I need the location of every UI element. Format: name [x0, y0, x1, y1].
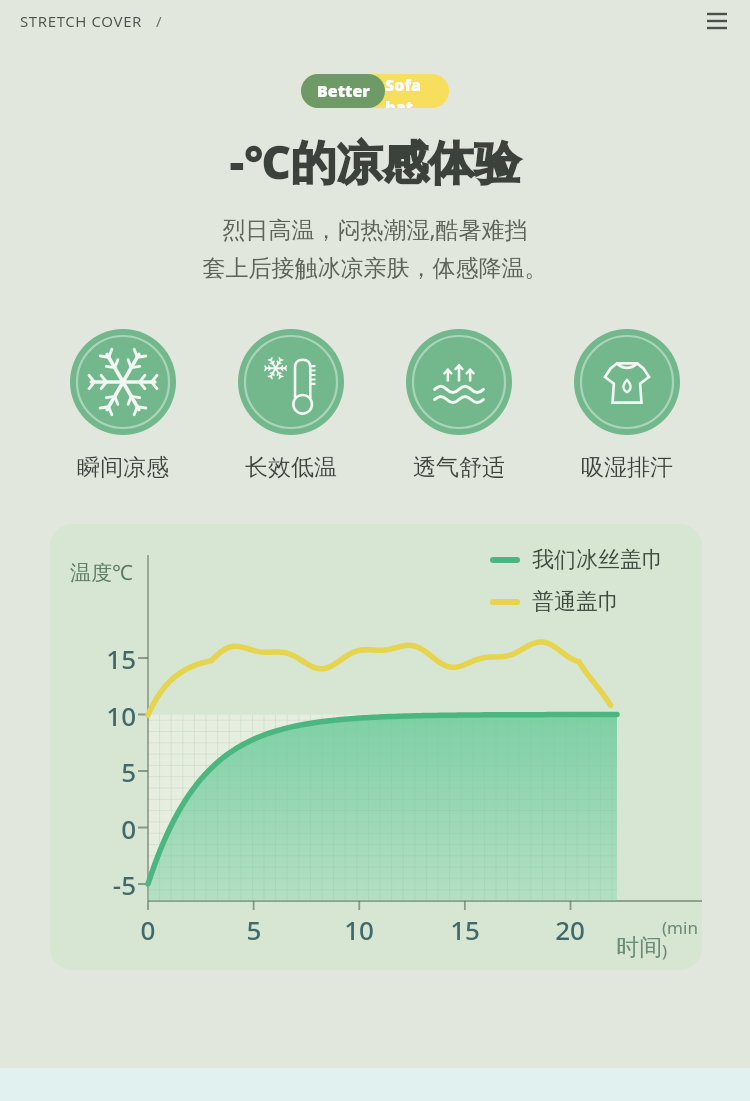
- staticText: 透气舒适: [413, 453, 505, 482]
- staticText: 时间: [616, 933, 662, 962]
- staticText: 10: [50, 698, 136, 733]
- staticText: Sofa hat: [385, 74, 449, 108]
- staticText: 15: [50, 641, 136, 676]
- staticText: 长效低温: [245, 453, 337, 482]
- other: 吸湿排汗: [574, 329, 680, 435]
- staticText: 0: [50, 811, 136, 846]
- other: 长效低温: [238, 329, 344, 435]
- staticText: 20: [544, 912, 596, 947]
- staticText: STRETCH COVER: [20, 11, 142, 31]
- staticText: 瞬间凉感: [77, 453, 169, 482]
- staticText: 温度℃: [70, 558, 133, 587]
- button[interactable]: 长效低温: [238, 329, 344, 482]
- button[interactable]: 瞬间凉感: [70, 329, 176, 482]
- staticText: 0: [122, 912, 174, 947]
- staticText: /: [156, 11, 162, 31]
- staticText: 烈日高温，闷热潮湿,酷暑难挡: [0, 213, 750, 244]
- staticText: 5: [228, 912, 280, 947]
- button[interactable]: Menu: [702, 6, 732, 36]
- staticText: 吸湿排汗: [581, 453, 673, 482]
- button[interactable]: Better: [301, 74, 449, 108]
- staticText: 10: [333, 912, 385, 947]
- staticText: -℃的凉感体验: [0, 130, 750, 193]
- staticText: 我们冰丝盖巾: [532, 546, 664, 574]
- button[interactable]: 透气舒适: [406, 329, 512, 482]
- button[interactable]: 我们冰丝盖巾: [490, 546, 664, 574]
- button[interactable]: 吸湿排汗: [574, 329, 680, 482]
- staticText: 普通盖巾: [532, 588, 620, 616]
- staticText: -5: [50, 867, 136, 902]
- staticText: 5: [50, 754, 136, 789]
- staticText: 套上后接触冰凉亲肤，体感降温。: [0, 254, 750, 283]
- button[interactable]: STRETCH COVER: [20, 11, 162, 31]
- other: 透气舒适: [406, 329, 512, 435]
- staticText: 15: [439, 912, 491, 947]
- button[interactable]: 普通盖巾: [490, 588, 620, 616]
- staticText: (min): [662, 916, 702, 962]
- other: 瞬间凉感: [70, 329, 176, 435]
- staticText: Better: [317, 80, 370, 102]
